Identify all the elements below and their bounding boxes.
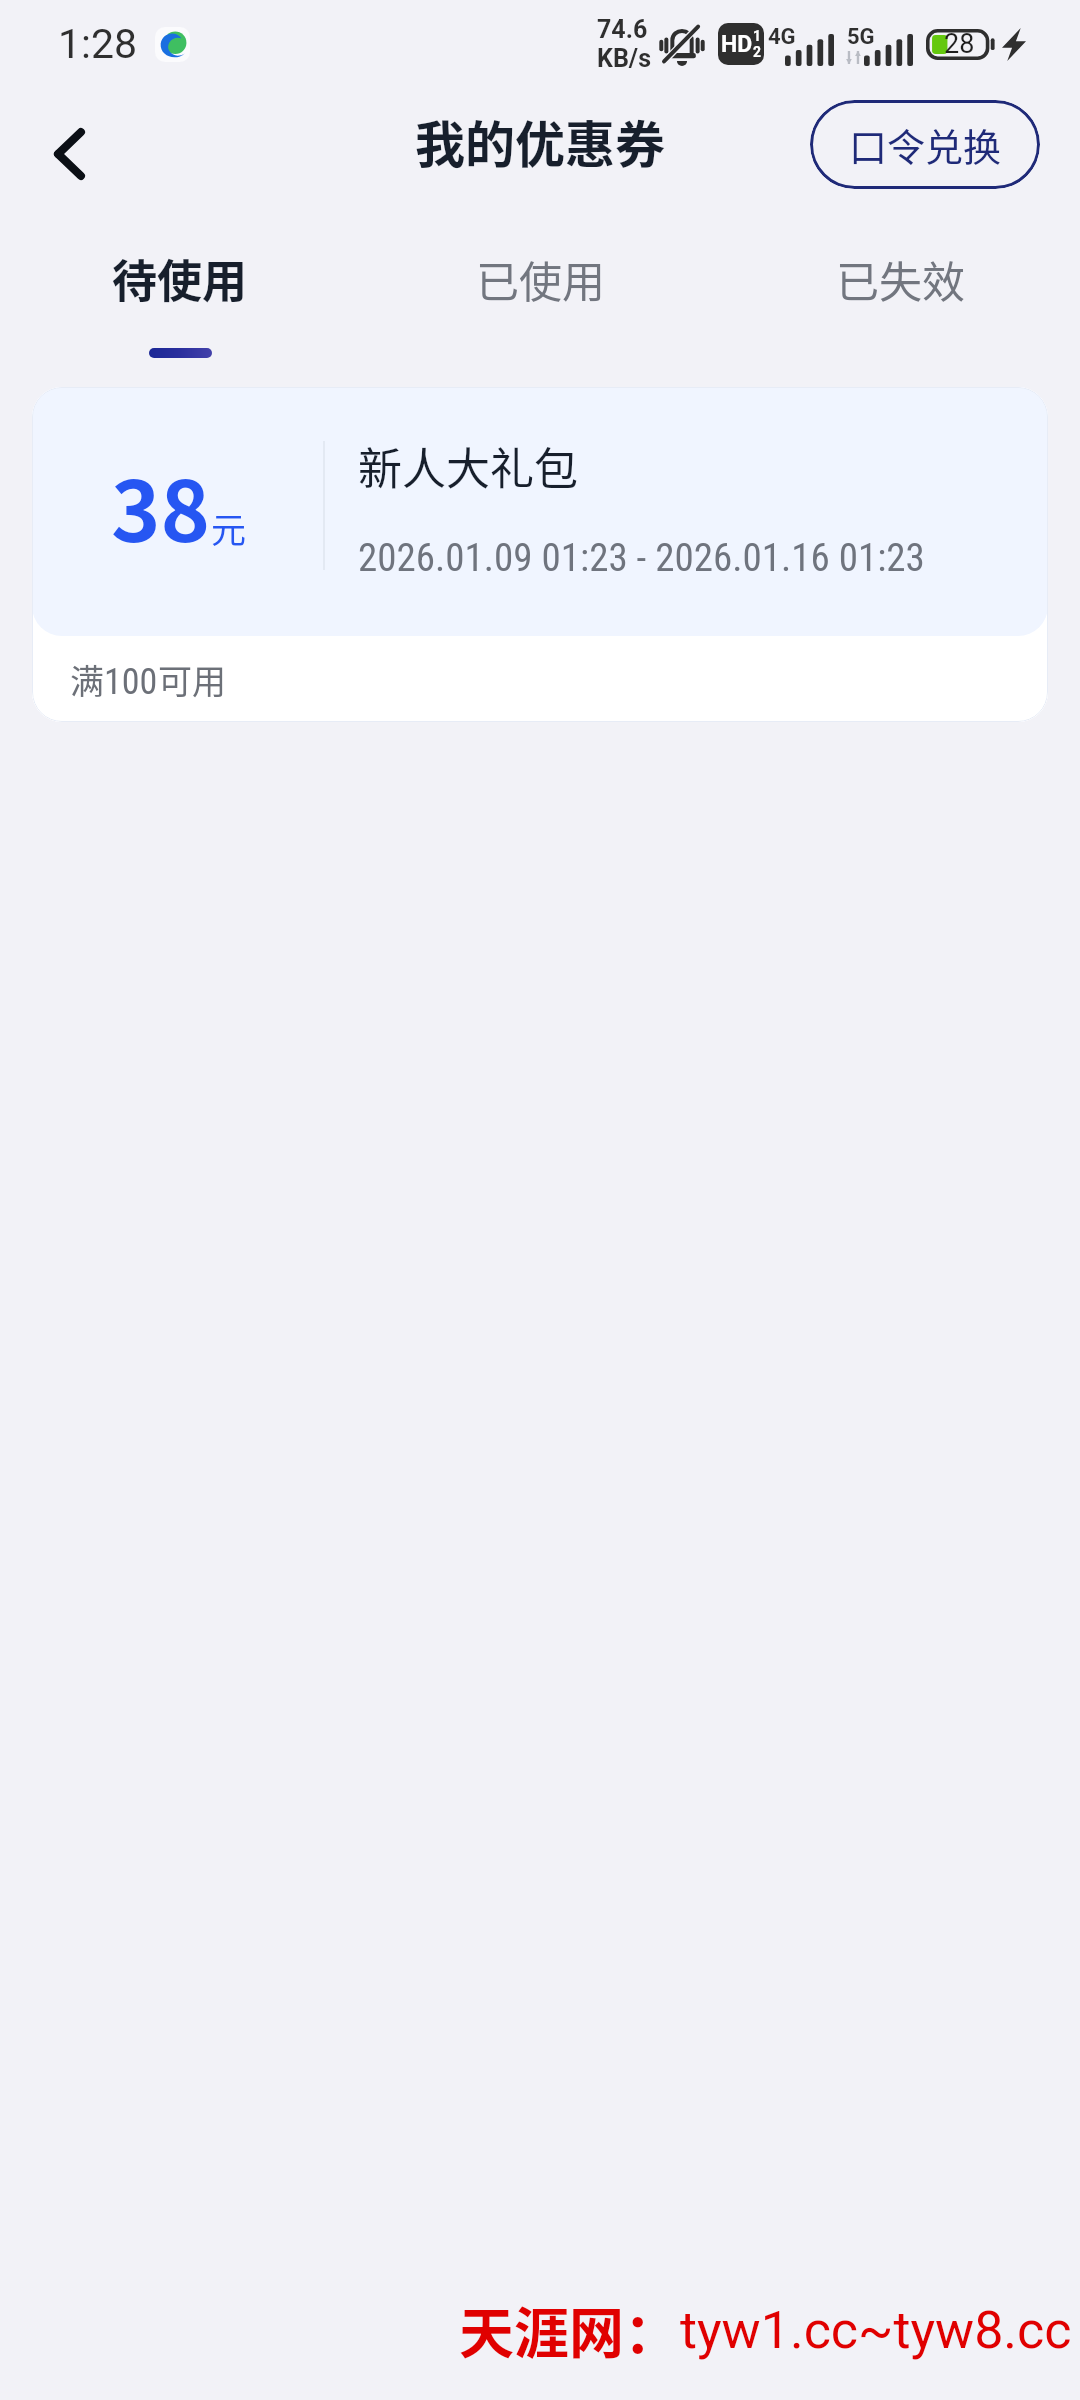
staticText: 38 [111,445,211,567]
staticText: 1 [753,28,762,44]
button[interactable]: 已使用 [360,201,720,387]
staticText: 74.6 [597,15,648,44]
staticText: 可用 [158,655,226,704]
staticText: KB/s [597,44,651,73]
staticText: 待使用 [112,246,248,311]
staticText: 2 [753,44,762,60]
staticText: HD [721,31,753,58]
staticText: 5G [847,24,875,50]
staticText: 已使用 [476,248,605,310]
staticText: 已失效 [836,248,965,310]
button[interactable]: 口令兑换 [810,100,1040,189]
staticText: 100 [104,661,158,703]
button[interactable]: 已失效 [720,201,1080,387]
staticText: 1:28 [58,20,138,68]
staticText: 天涯网： [459,2289,680,2369]
staticText: 我的优惠券 [415,105,665,177]
staticText: 口令兑换 [849,117,1002,172]
staticText: 新人大礼包 [358,434,578,498]
button[interactable]: 38 [32,387,1048,722]
staticText: 28 [944,28,975,60]
staticText: 2026.01.09 01:23 - 2026.01.16 01:23 [358,535,925,581]
staticText: 4G [768,24,796,50]
button[interactable]: 待使用 [0,201,360,387]
staticText: 元 [211,502,247,553]
staticText: 满 [70,655,104,704]
staticText: tyw1.cc~tyw8.cc [680,2300,1072,2361]
button[interactable]: Back [21,97,117,193]
